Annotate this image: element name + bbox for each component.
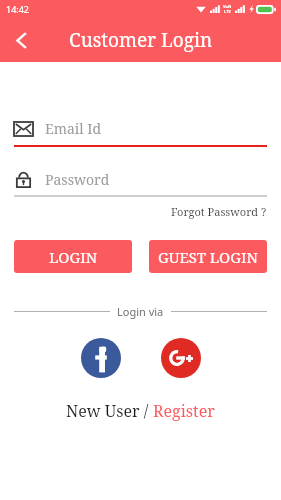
staticText: Email Id (45, 119, 102, 138)
button[interactable]: Forgot Password ? (171, 204, 267, 219)
button[interactable]: Register (153, 400, 215, 422)
staticText: LOGIN (49, 247, 98, 267)
button[interactable]: GUEST LOGIN (149, 240, 267, 273)
button[interactable]: LOGIN (14, 240, 132, 273)
staticText: Password (45, 170, 110, 189)
staticText: VoN (223, 4, 232, 9)
staticText: New User / (66, 400, 153, 422)
button[interactable]: Login with Facebook (81, 338, 121, 378)
button[interactable]: Login with Google (161, 338, 201, 378)
staticText: Customer Login (69, 27, 213, 53)
staticText: 14:42 (6, 3, 30, 15)
staticText: LTE (224, 9, 231, 14)
staticText: GUEST LOGIN (158, 247, 258, 267)
staticText: Login via (117, 304, 164, 319)
button[interactable]: Back (3, 22, 39, 58)
